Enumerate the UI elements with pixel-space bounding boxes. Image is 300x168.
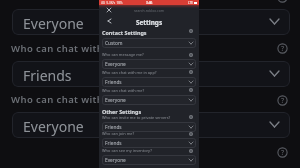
button[interactable]: Back: [104, 16, 114, 26]
staticText: Who can see my inventory?: [102, 148, 152, 153]
staticText: 3:46: [146, 1, 153, 5]
staticText: Who can join me?: [102, 131, 135, 136]
button[interactable]: Help: [277, 0, 288, 3]
button[interactable]: Friends: [102, 122, 196, 132]
button[interactable]: Help: [188, 52, 194, 58]
staticText: LTE: [188, 1, 193, 5]
staticText: ?: [281, 96, 285, 106]
button[interactable]: Help: [277, 95, 288, 106]
staticText: Who can message me?: [102, 52, 144, 57]
staticText: Custom: [105, 40, 123, 47]
staticText: Everyone: [23, 117, 84, 136]
staticText: Who can chat with me?: [102, 88, 145, 93]
staticText: Friends: [105, 79, 122, 86]
staticText: Who can chat with me in app?: [102, 70, 157, 75]
staticText: Settings: [99, 18, 199, 27]
staticText: ?: [281, 44, 285, 54]
button[interactable]: Everyone: [102, 59, 196, 69]
button[interactable]: Help: [188, 148, 194, 154]
button[interactable]: Friends: [102, 138, 196, 148]
staticText: Who can invite me to private servers?: [102, 115, 171, 120]
staticText: Friends: [23, 66, 72, 85]
button[interactable]: Help: [277, 147, 288, 158]
button[interactable]: Help: [188, 28, 194, 34]
staticText: Everyone: [105, 157, 126, 164]
staticText: Everyone: [23, 14, 84, 33]
staticText: Who can chat with: [11, 93, 104, 106]
staticText: Everyone: [105, 97, 126, 104]
staticText: Friends: [105, 140, 122, 147]
button[interactable]: Custom: [102, 38, 196, 48]
button[interactable]: Help: [188, 114, 194, 120]
button[interactable]: Everyone: [102, 155, 196, 165]
button[interactable]: Help: [188, 131, 194, 137]
button[interactable]: Close: [104, 5, 114, 15]
staticText: Friends: [105, 124, 122, 131]
staticText: search.roblox.com: [99, 8, 199, 13]
staticText: 4G 5.3K/s 93%: [101, 1, 123, 5]
staticText: Contact Settings: [102, 29, 147, 36]
staticText: ?: [281, 0, 285, 3]
staticText: Everyone: [105, 61, 126, 68]
button[interactable]: Help: [188, 87, 194, 93]
button[interactable]: Help: [188, 69, 194, 75]
button[interactable]: Everyone: [102, 95, 196, 105]
staticText: Who can chat with: [11, 42, 104, 55]
staticText: ?: [281, 148, 285, 158]
staticText: Other Settings: [102, 108, 142, 115]
button[interactable]: Help: [277, 43, 288, 54]
button[interactable]: Friends: [102, 77, 196, 87]
